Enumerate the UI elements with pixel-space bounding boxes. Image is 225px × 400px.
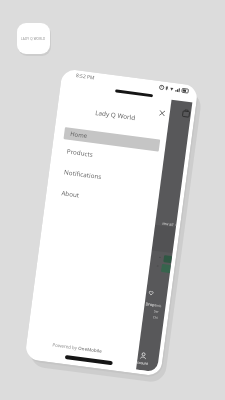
button[interactable]: iew all > [136,100,192,372]
staticText: OneMobile [78,345,103,354]
staticText: Powered by [52,341,79,351]
button[interactable]: Notifications [58,164,155,190]
staticText: Ser [153,309,159,314]
staticText: Drop [145,301,155,307]
button[interactable] [156,107,168,119]
staticText: = [159,254,162,260]
staticText: ccount [137,359,149,366]
staticText: iew all > [162,221,176,227]
staticText: 8:52 PM [75,72,95,81]
staticText: Products [66,147,94,159]
staticText: Chi [153,315,158,320]
staticText: Lady Q World [95,108,136,122]
staticText: Notifications [64,167,102,181]
staticText: Emb [154,303,162,308]
button[interactable]: About [56,185,153,211]
staticText: LADY Q WORLD [21,37,46,41]
button[interactable]: Home [63,127,160,151]
button[interactable]: Products [61,143,158,169]
staticText: About [61,188,80,200]
staticText: Home [70,130,89,140]
button[interactable]: LADY Q WORLD [17,23,50,54]
